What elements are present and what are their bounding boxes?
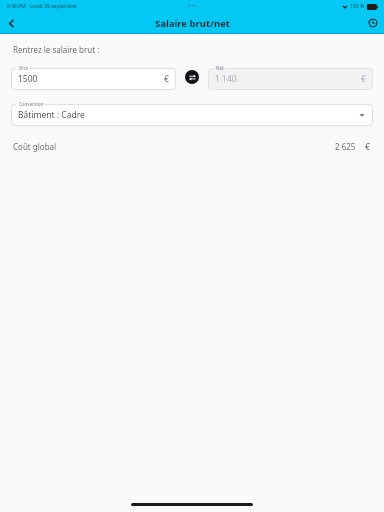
button[interactable]: Back: [0, 12, 22, 34]
staticText: Bâtiment : Cadre: [18, 109, 85, 121]
staticText: Salaire brut/net: [155, 17, 230, 30]
staticText: • • •: [188, 3, 197, 10]
staticText: €: [361, 73, 366, 85]
staticText: €: [365, 140, 371, 152]
staticText: Brut: [19, 65, 29, 71]
staticText: 1 140: [215, 73, 237, 85]
staticText: Coût global: [13, 141, 57, 152]
button[interactable]: Swap brut and net: [176, 64, 208, 90]
button[interactable]: Brut: [11, 64, 176, 90]
staticText: 100 %: [350, 3, 365, 10]
staticText: 6:48 PM Lundi 29 septembre: [7, 3, 77, 10]
staticText: Net: [216, 65, 224, 71]
staticText: Convention: [19, 101, 44, 107]
button[interactable]: Net: [208, 64, 373, 90]
staticText: 2 625: [335, 141, 356, 152]
button[interactable]: History: [362, 12, 384, 34]
staticText: 1500: [18, 73, 38, 85]
staticText: Rentrez le salaire brut :: [13, 44, 100, 55]
staticText: €: [164, 73, 169, 85]
button[interactable]: Convention: [11, 100, 373, 126]
